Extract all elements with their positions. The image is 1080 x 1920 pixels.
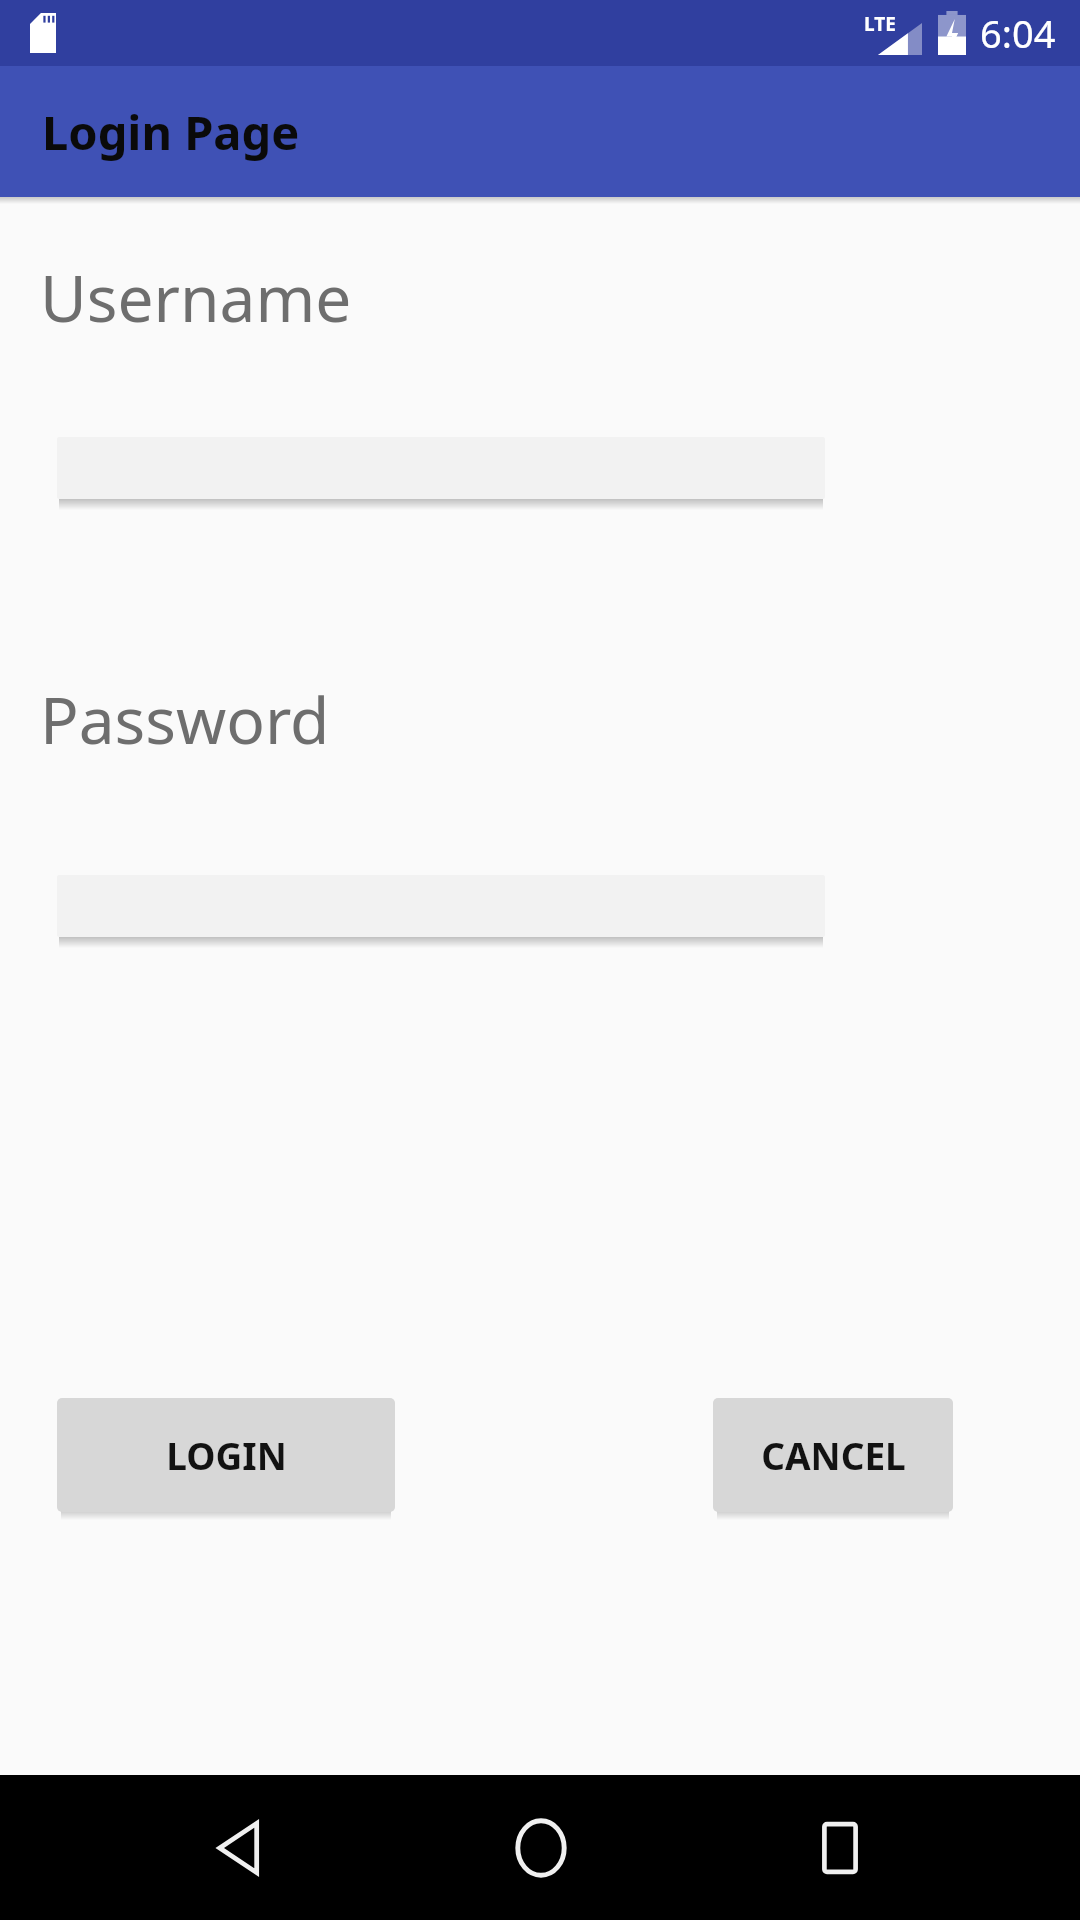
staticText: 6:04	[980, 7, 1056, 59]
staticText: CANCEL	[761, 1430, 906, 1480]
button[interactable]: CANCEL	[713, 1398, 953, 1512]
staticText: Login Page	[42, 100, 300, 164]
staticText: LTE	[864, 11, 896, 33]
button[interactable]: Recent apps	[767, 1775, 912, 1920]
staticText: LOGIN	[166, 1430, 287, 1480]
button[interactable]: LOGIN	[57, 1398, 395, 1512]
button[interactable]: Home	[468, 1775, 613, 1920]
button[interactable]: Back	[168, 1775, 313, 1920]
staticText: Password	[40, 676, 330, 763]
staticText: Username	[40, 254, 352, 341]
